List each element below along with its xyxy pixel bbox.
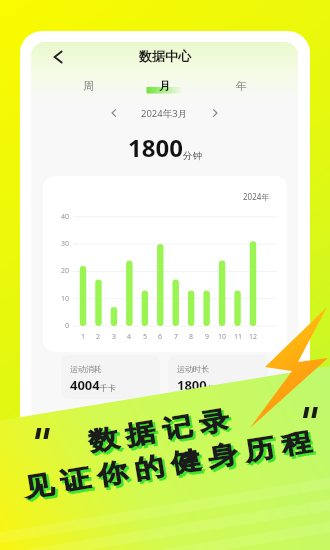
button[interactable]: Next month xyxy=(207,105,223,121)
staticText: 0 xyxy=(51,321,69,331)
staticText: 千卡 xyxy=(100,383,116,393)
staticText: 4004 xyxy=(70,376,100,394)
button[interactable]: 周 xyxy=(50,76,126,96)
staticText: 2 xyxy=(89,332,107,342)
button[interactable]: Back xyxy=(48,48,70,66)
staticText: 年 xyxy=(236,79,247,93)
staticText: 周 xyxy=(83,79,94,93)
staticText: 4 xyxy=(120,332,138,342)
staticText: 1800 xyxy=(177,376,207,394)
staticText: 1 xyxy=(74,332,92,342)
staticText: 5 xyxy=(136,332,154,342)
staticText: 6 xyxy=(151,332,169,342)
staticText: 运动消耗 xyxy=(70,364,102,374)
staticText: 月 xyxy=(159,79,170,93)
staticText: 2024年 xyxy=(243,191,270,202)
staticText: 3 xyxy=(105,332,123,342)
staticText: 1800 xyxy=(128,131,183,164)
staticText: 数据记录 xyxy=(89,405,242,460)
button[interactable]: 运动时长 xyxy=(168,355,268,399)
staticText: 8 xyxy=(182,332,200,342)
staticText: 分钟 xyxy=(207,383,223,393)
staticText: 7 xyxy=(167,332,185,342)
staticText: 40 xyxy=(51,212,69,222)
staticText: 12 xyxy=(244,332,262,342)
staticText: 30 xyxy=(51,239,69,249)
staticText: 见证你的健身历程 xyxy=(24,426,324,506)
staticText: 20 xyxy=(51,266,69,276)
button[interactable]: Previous month xyxy=(106,105,122,121)
staticText: 运动时长 xyxy=(177,364,209,374)
button[interactable]: 运动消耗 xyxy=(61,355,160,399)
staticText: 数据中心 xyxy=(139,48,191,64)
button[interactable]: 月 xyxy=(126,76,203,96)
staticText: 分钟 xyxy=(183,150,202,162)
staticText: 数据记录 xyxy=(86,402,239,458)
staticText: 见证你的健身历程 xyxy=(21,424,321,504)
staticText: 2024年3月 xyxy=(141,107,188,120)
staticText: 10 xyxy=(213,332,231,342)
staticText: 9 xyxy=(198,332,216,342)
button[interactable]: 年 xyxy=(203,76,280,96)
staticText: 11 xyxy=(229,332,247,342)
staticText: 10 xyxy=(51,294,69,304)
